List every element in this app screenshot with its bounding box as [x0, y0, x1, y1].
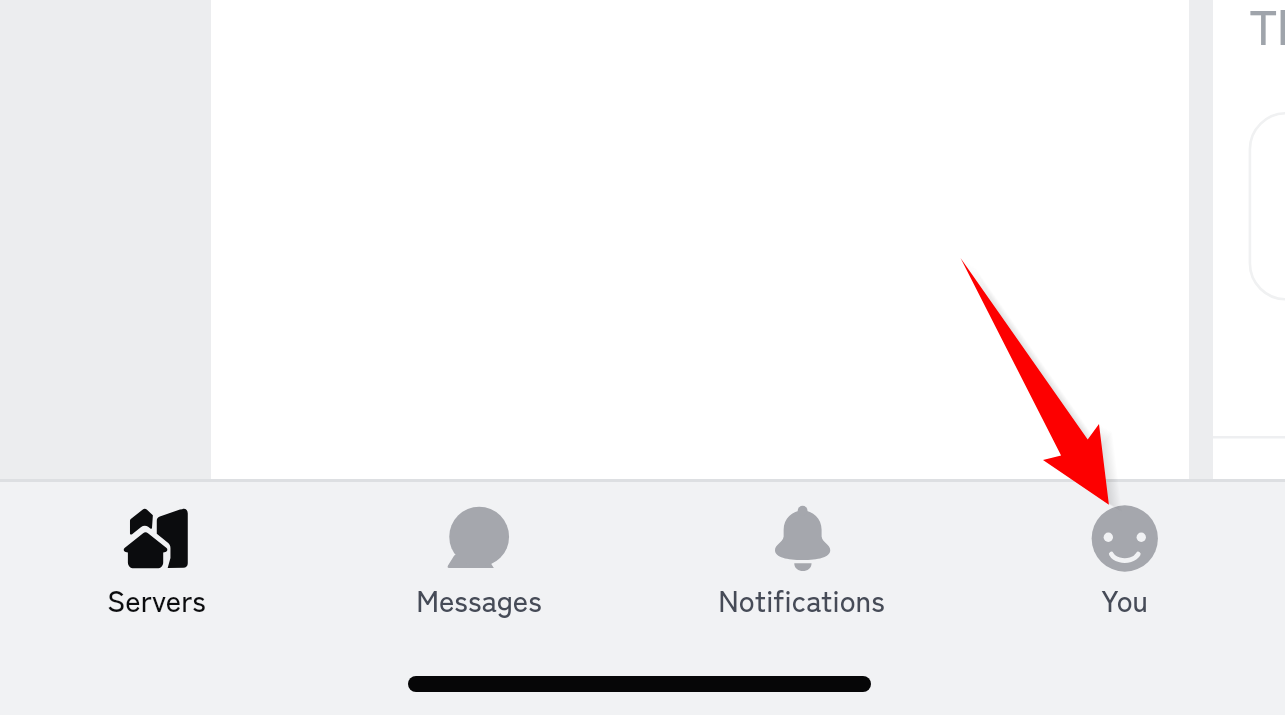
button[interactable]: Notifications — [640, 482, 963, 632]
staticText: Th — [1249, 0, 1285, 59]
button[interactable]: You — [963, 482, 1285, 632]
button[interactable]: Messages — [317, 482, 640, 632]
staticText: Notifications — [718, 578, 885, 621]
button[interactable]: Servers — [0, 482, 317, 632]
staticText: Servers — [107, 578, 206, 621]
staticText: Messages — [416, 578, 542, 621]
staticText: You — [1101, 578, 1148, 621]
